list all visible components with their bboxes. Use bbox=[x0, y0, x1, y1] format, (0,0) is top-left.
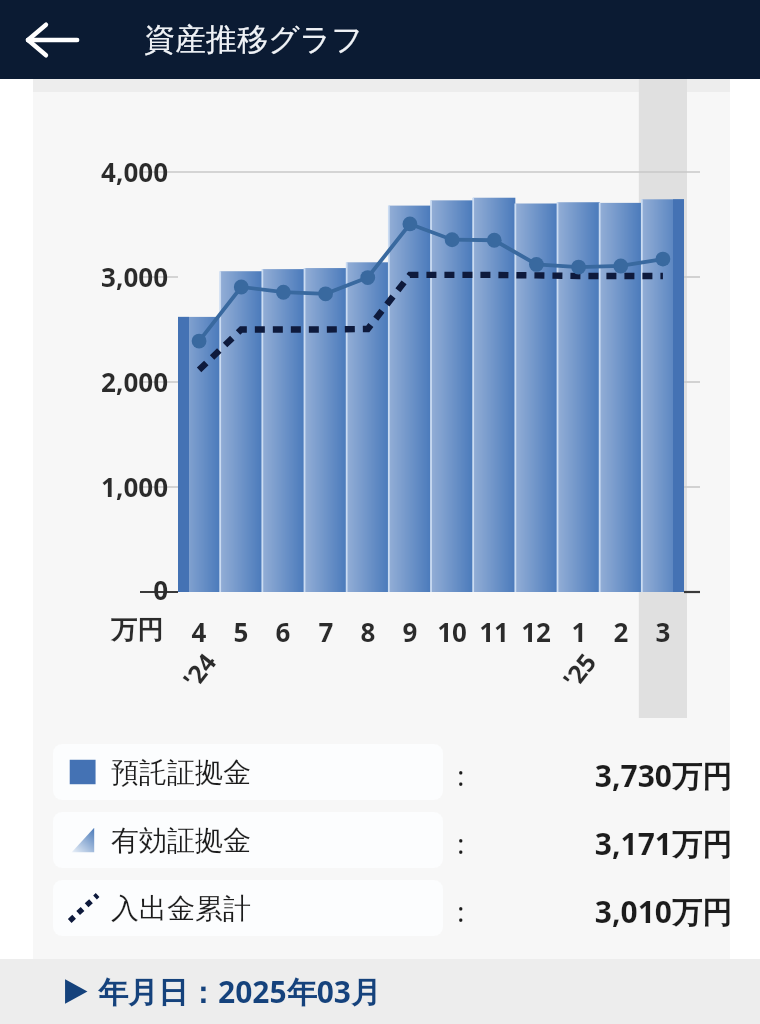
staticText: 預託証拠金 bbox=[111, 755, 251, 790]
staticText: 1 bbox=[557, 614, 601, 649]
staticText: '24 bbox=[174, 645, 223, 695]
staticText: 1,000 bbox=[50, 469, 168, 504]
staticText: 4 bbox=[177, 614, 221, 649]
staticText: 2,000 bbox=[50, 364, 168, 399]
staticText: 0 bbox=[50, 572, 168, 607]
staticText: 11 bbox=[472, 614, 516, 649]
staticText: 3,010万円 bbox=[480, 891, 732, 932]
staticText: 入出金累計 bbox=[111, 891, 251, 926]
staticText: 10 bbox=[430, 614, 474, 649]
staticText: 2 bbox=[599, 614, 643, 649]
button[interactable]: 有効証拠金 bbox=[53, 812, 443, 868]
staticText: 4,000 bbox=[50, 154, 168, 189]
button[interactable]: 入出金累計 bbox=[53, 880, 443, 936]
staticText: 7 bbox=[304, 614, 348, 649]
staticText: 3 bbox=[641, 614, 685, 649]
button[interactable]: Back bbox=[22, 10, 82, 70]
staticText: 年月日：2025年03月 bbox=[98, 971, 381, 1012]
staticText: 9 bbox=[388, 614, 432, 649]
staticText: : bbox=[457, 892, 465, 930]
staticText: '25 bbox=[554, 645, 603, 695]
button[interactable]: 年月日：2025年03月 bbox=[0, 959, 760, 1024]
staticText: 3,730万円 bbox=[480, 755, 732, 796]
staticText: : bbox=[457, 756, 465, 794]
staticText: : bbox=[457, 824, 465, 862]
staticText: 8 bbox=[346, 614, 390, 649]
staticText: 3,171万円 bbox=[480, 823, 732, 864]
staticText: 有効証拠金 bbox=[111, 823, 251, 858]
staticText: 6 bbox=[261, 614, 305, 649]
staticText: 資産推移グラフ bbox=[144, 20, 364, 59]
staticText: 5 bbox=[219, 614, 263, 649]
staticText: 3,000 bbox=[50, 259, 168, 294]
staticText: 万円 bbox=[111, 614, 163, 647]
button[interactable]: 預託証拠金 bbox=[53, 744, 443, 800]
staticText: 12 bbox=[514, 614, 558, 649]
